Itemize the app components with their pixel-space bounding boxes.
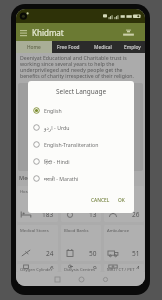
- staticText: MRI / CT / PET: [107, 267, 135, 272]
- button[interactable]: CANCEL: [88, 195, 113, 206]
- button[interactable]: Free Food: [52, 41, 85, 53]
- staticText: Medical: [19, 174, 40, 182]
- staticText: 9: [93, 264, 97, 269]
- staticText: Dialysis Centres: [64, 267, 96, 272]
- staticText: 13: [89, 210, 97, 219]
- staticText: Hospitals: [20, 189, 39, 195]
- button[interactable]: English-Transliteration: [28, 136, 134, 153]
- button[interactable]: Home: [69, 272, 93, 286]
- staticText: Home: [27, 44, 41, 51]
- button[interactable]: اردو - Urdu: [28, 119, 134, 136]
- button[interactable]: Employ: [120, 41, 145, 53]
- button[interactable]: English: [28, 102, 134, 119]
- button[interactable]: Oxygen Cylinder: [17, 264, 58, 272]
- staticText: اردو - Urdu: [44, 124, 70, 131]
- staticText: 183: [42, 210, 54, 219]
- staticText: 4: [136, 264, 140, 269]
- staticText: CANCEL: [91, 197, 110, 204]
- staticText: English-Transliteration: [44, 141, 99, 148]
- staticText: Oxygen Cylinder: [20, 267, 53, 272]
- staticText: OK: [118, 197, 125, 204]
- staticText: Select Language: [56, 87, 107, 96]
- button[interactable]: Open navigation menu: [17, 26, 30, 39]
- staticText: Free Food: [57, 44, 80, 51]
- button[interactable]: Ambulance: [104, 225, 144, 261]
- staticText: Blood Banks: [64, 228, 89, 234]
- button[interactable]: Hospitals: [17, 186, 58, 222]
- button[interactable]: Blood Donors: [61, 186, 101, 222]
- button[interactable]: Doctors: [104, 186, 144, 222]
- staticText: 26: [132, 210, 140, 219]
- staticText: 24: [46, 249, 54, 258]
- button[interactable]: Medical Stores: [17, 225, 58, 261]
- staticText: मराठी - Marathi: [44, 175, 79, 182]
- staticText: 51: [132, 249, 140, 258]
- button[interactable]: Dialysis Centres: [61, 264, 101, 272]
- staticText: Khidmat: [32, 27, 64, 38]
- staticText: English: [44, 107, 62, 114]
- button[interactable]: Blood Banks: [61, 225, 101, 261]
- staticText: Medical: [94, 44, 112, 51]
- button[interactable]: Back: [93, 272, 117, 286]
- staticText: हिंदी - Hindi: [44, 158, 70, 165]
- staticText: Medical Stores: [20, 228, 49, 234]
- staticText: Deeniyat Educational and Charitable trus…: [20, 54, 141, 80]
- button[interactable]: हिंदी - Hindi: [28, 153, 134, 170]
- button[interactable]: Recent apps: [45, 272, 69, 286]
- staticText: 50: [89, 249, 97, 258]
- button[interactable]: MRI / CT / PET: [104, 264, 144, 272]
- button[interactable]: OK: [115, 195, 128, 206]
- button[interactable]: Home: [16, 41, 52, 53]
- staticText: 6: [50, 264, 54, 269]
- staticText: Employ: [124, 44, 141, 51]
- button[interactable]: Medical: [85, 41, 120, 53]
- button[interactable]: मराठी - Marathi: [28, 170, 134, 187]
- staticText: Ambulance: [107, 228, 130, 234]
